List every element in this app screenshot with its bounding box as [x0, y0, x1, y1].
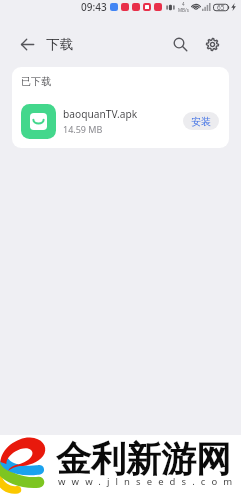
staticText: MB/s: [178, 7, 189, 13]
button[interactable]: Back: [0, 24, 40, 64]
button[interactable]: baoquanTV.apk: [21, 98, 219, 144]
staticText: 14.59 MB: [63, 123, 103, 135]
button[interactable]: Settings: [196, 28, 228, 60]
staticText: 安装: [191, 115, 211, 128]
staticText: 09:43: [81, 0, 107, 14]
staticText: 65: [217, 3, 225, 12]
staticText: baoquanTV.apk: [63, 107, 138, 121]
staticText: 下载: [46, 36, 73, 53]
staticText: 已下载: [21, 75, 51, 88]
staticText: 金利新游网: [56, 437, 231, 481]
button[interactable]: 安装: [183, 112, 219, 130]
staticText: www.jlnseeds.com: [58, 475, 239, 488]
staticText: 4: [182, 1, 185, 7]
button[interactable]: Search: [164, 28, 196, 60]
